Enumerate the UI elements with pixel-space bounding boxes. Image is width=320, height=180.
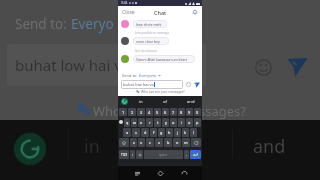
staticText: and — [187, 99, 195, 105]
button[interactable]: 9 — [186, 108, 193, 116]
staticText: . — [186, 152, 187, 157]
staticText: of — [163, 99, 167, 105]
button[interactable]: r — [146, 118, 153, 127]
button[interactable]: voice close bey — [121, 37, 202, 45]
staticText: f — [153, 130, 155, 135]
button[interactable]: space — [144, 150, 183, 159]
button[interactable]: g — [158, 128, 165, 137]
button[interactable]: Send — [193, 81, 200, 88]
staticText: o — [188, 120, 191, 125]
staticText: v — [158, 140, 160, 145]
button[interactable]: f — [150, 128, 157, 137]
button[interactable]: 2 — [128, 108, 136, 116]
staticText: m — [184, 140, 188, 145]
staticText: Sisters Allah lawassas tum kitart — [136, 57, 188, 62]
staticText: n — [176, 140, 179, 145]
button[interactable]: Recents — [132, 168, 142, 178]
staticText: r — [149, 120, 151, 125]
button[interactable]: p — [194, 118, 201, 127]
staticText: Who can see your messages? — [141, 90, 185, 94]
button[interactable]: z — [130, 138, 137, 147]
staticText: b — [167, 140, 170, 145]
button[interactable]: 5 — [154, 108, 161, 116]
button[interactable]: t — [154, 118, 161, 127]
staticText: voice close bey — [136, 39, 160, 44]
staticText: lana chote mahi — [136, 22, 162, 27]
staticText: ?123 — [121, 153, 128, 157]
button[interactable]: Back — [179, 168, 189, 178]
button[interactable]: i — [178, 118, 185, 127]
button[interactable]: q — [124, 118, 130, 127]
staticText: w — [133, 120, 136, 125]
button[interactable]: lana chote mahi — [121, 20, 202, 28]
staticText: 8 — [180, 110, 183, 115]
button[interactable]: o — [186, 118, 193, 127]
button[interactable]: buhat low hai vo — [123, 80, 181, 89]
button[interactable]: v — [155, 138, 163, 147]
button[interactable]: ?123 — [119, 150, 129, 159]
button[interactable]: n — [173, 138, 181, 147]
staticText: in — [139, 99, 143, 105]
button[interactable]: Voice input — [136, 150, 143, 159]
button[interactable]: k — [182, 128, 189, 137]
button[interactable]: l — [190, 128, 197, 137]
button[interactable]: x — [138, 138, 145, 147]
staticText: j — [177, 130, 178, 135]
button[interactable]: d — [141, 128, 149, 137]
staticText: Chat — [154, 9, 167, 16]
button[interactable]: Close — [122, 6, 135, 18]
staticText: Send to: — [122, 73, 139, 78]
button[interactable]: j — [174, 128, 181, 137]
staticText: 1 — [122, 110, 125, 115]
staticText: space — [159, 153, 168, 157]
button[interactable]: Google — [121, 98, 128, 105]
staticText: c — [149, 140, 151, 145]
button[interactable]: 7 — [170, 108, 177, 116]
button[interactable]: e — [138, 118, 145, 127]
button[interactable]: m — [182, 138, 190, 147]
staticText: Close — [122, 9, 135, 16]
button[interactable]: : — [130, 150, 135, 159]
staticText: 5 — [156, 110, 159, 115]
button[interactable]: w — [131, 118, 137, 127]
button[interactable]: 1 — [119, 108, 127, 116]
button[interactable]: Enter — [190, 150, 201, 159]
staticText: Lint tera kaunsa — [135, 49, 157, 53]
staticText: 9:34 — [121, 1, 128, 5]
button[interactable]: a — [123, 128, 131, 137]
button[interactable]: h — [166, 128, 173, 137]
button[interactable]: Notifications — [191, 8, 199, 16]
staticText: x — [140, 140, 143, 145]
button[interactable]: Emoji — [185, 81, 191, 87]
staticText: buhat low hai vo — [15, 55, 131, 75]
staticText: h — [168, 130, 171, 135]
button[interactable]: 0 — [194, 108, 201, 116]
button[interactable]: Emoji keyboard — [119, 120, 123, 124]
button[interactable]: y — [162, 118, 169, 127]
staticText: q — [126, 120, 129, 125]
button[interactable]: b — [164, 138, 172, 147]
staticText: l — [193, 130, 194, 135]
button[interactable]: Home — [155, 168, 165, 178]
button[interactable]: Emoji — [255, 59, 272, 76]
staticText: 3 — [140, 110, 143, 115]
button[interactable]: 3 — [137, 108, 145, 116]
button[interactable]: . — [184, 150, 189, 159]
button[interactable]: Shift — [119, 138, 129, 147]
button[interactable]: 4 — [146, 108, 153, 116]
button[interactable]: Sisters Allah lawassas tum kitart — [121, 55, 202, 63]
staticText: in — [84, 134, 100, 159]
button[interactable]: c — [146, 138, 154, 147]
button[interactable]: s — [132, 128, 140, 137]
button[interactable]: Send — [287, 56, 308, 77]
staticText: tera possible se message — [135, 31, 170, 35]
staticText: 4 — [148, 110, 151, 115]
button[interactable]: 6 — [162, 108, 169, 116]
staticText: Everyone — [139, 73, 157, 78]
button[interactable]: 8 — [178, 108, 185, 116]
button[interactable]: u — [170, 118, 177, 127]
staticText: : — [132, 152, 133, 157]
staticText: k — [184, 130, 187, 135]
button[interactable]: Backspace — [191, 138, 201, 147]
staticText: 6 — [164, 110, 167, 115]
